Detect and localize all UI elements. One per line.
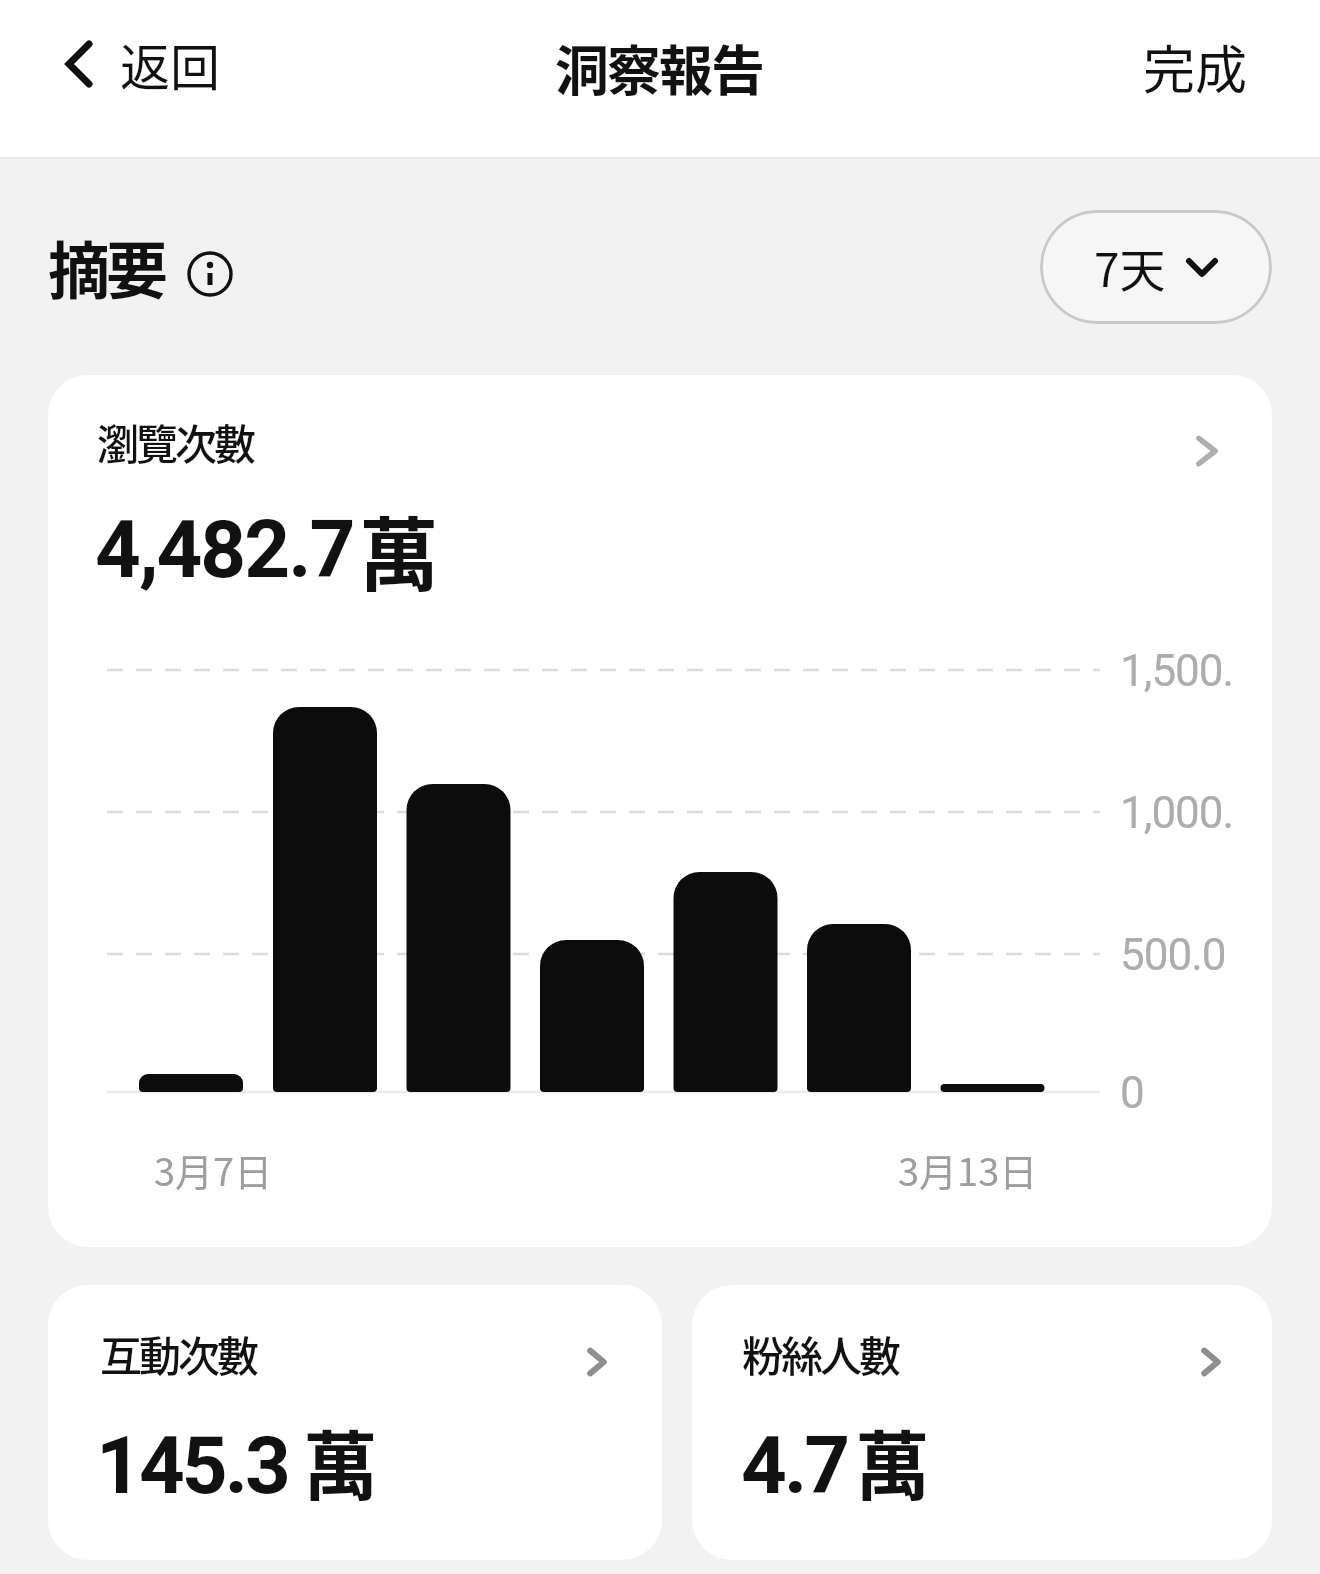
staticText: 摘要 (48, 222, 165, 312)
button[interactable] (183, 247, 237, 301)
staticText: 1,500. (1120, 645, 1234, 697)
staticText: 互動次數 (100, 1323, 257, 1384)
button[interactable]: 瀏覽次數 (48, 375, 1272, 1247)
staticText: 完成 (1143, 29, 1248, 104)
staticText: 1,000. (1120, 787, 1234, 839)
staticText: 500.0 (1120, 929, 1226, 981)
button[interactable]: 7天 (1040, 210, 1272, 324)
staticText: 返回 (120, 28, 220, 100)
staticText: 3月13日 (898, 1142, 1038, 1197)
staticText: 4.7 (741, 1419, 848, 1513)
staticText: 萬 (303, 1407, 379, 1516)
staticText: 萬 (855, 1407, 931, 1516)
staticText: 0 (1120, 1067, 1144, 1119)
button[interactable]: 完成 (1120, 24, 1270, 108)
staticText: 3月7日 (154, 1142, 273, 1197)
staticText: 洞察報告 (555, 28, 763, 106)
staticText: 7天 (1094, 234, 1166, 301)
button[interactable]: 返回 (64, 22, 220, 106)
staticText: 4,482.7 (95, 503, 354, 597)
staticText: 瀏覽次數 (97, 411, 254, 472)
staticText: 粉絲人數 (742, 1323, 899, 1384)
button[interactable]: 粉絲人數 (692, 1285, 1272, 1560)
button[interactable]: 互動次數 (48, 1285, 662, 1560)
staticText: 145.3 (96, 1419, 288, 1513)
staticText: 萬 (359, 491, 439, 607)
